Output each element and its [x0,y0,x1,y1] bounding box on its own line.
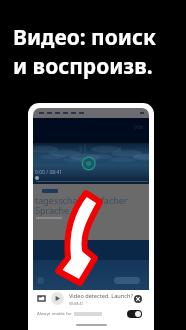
staticText: Always enable for [37,311,72,317]
staticText: Sprache [35,204,70,216]
staticText: Video detected. Launch? [69,292,133,300]
staticText: 00:08:41 [69,301,84,306]
button[interactable]: Picture in picture [33,290,149,307]
staticText: 9:bt [134,124,144,131]
staticText: и воспроизв. [13,52,153,81]
button[interactable]: Always enable for [33,307,149,320]
staticText: tagesschau: einfacher [35,194,128,206]
button[interactable]: Play [51,292,64,305]
button[interactable]: 9:bt [33,118,149,184]
staticText: 0:00 / 08:41 [35,169,63,176]
button[interactable]: Close [134,295,142,303]
button[interactable]: Picture in picture [38,295,45,302]
staticText: Видео: поиск [13,23,156,52]
button[interactable]: tagesschau: einfacher [33,184,149,240]
